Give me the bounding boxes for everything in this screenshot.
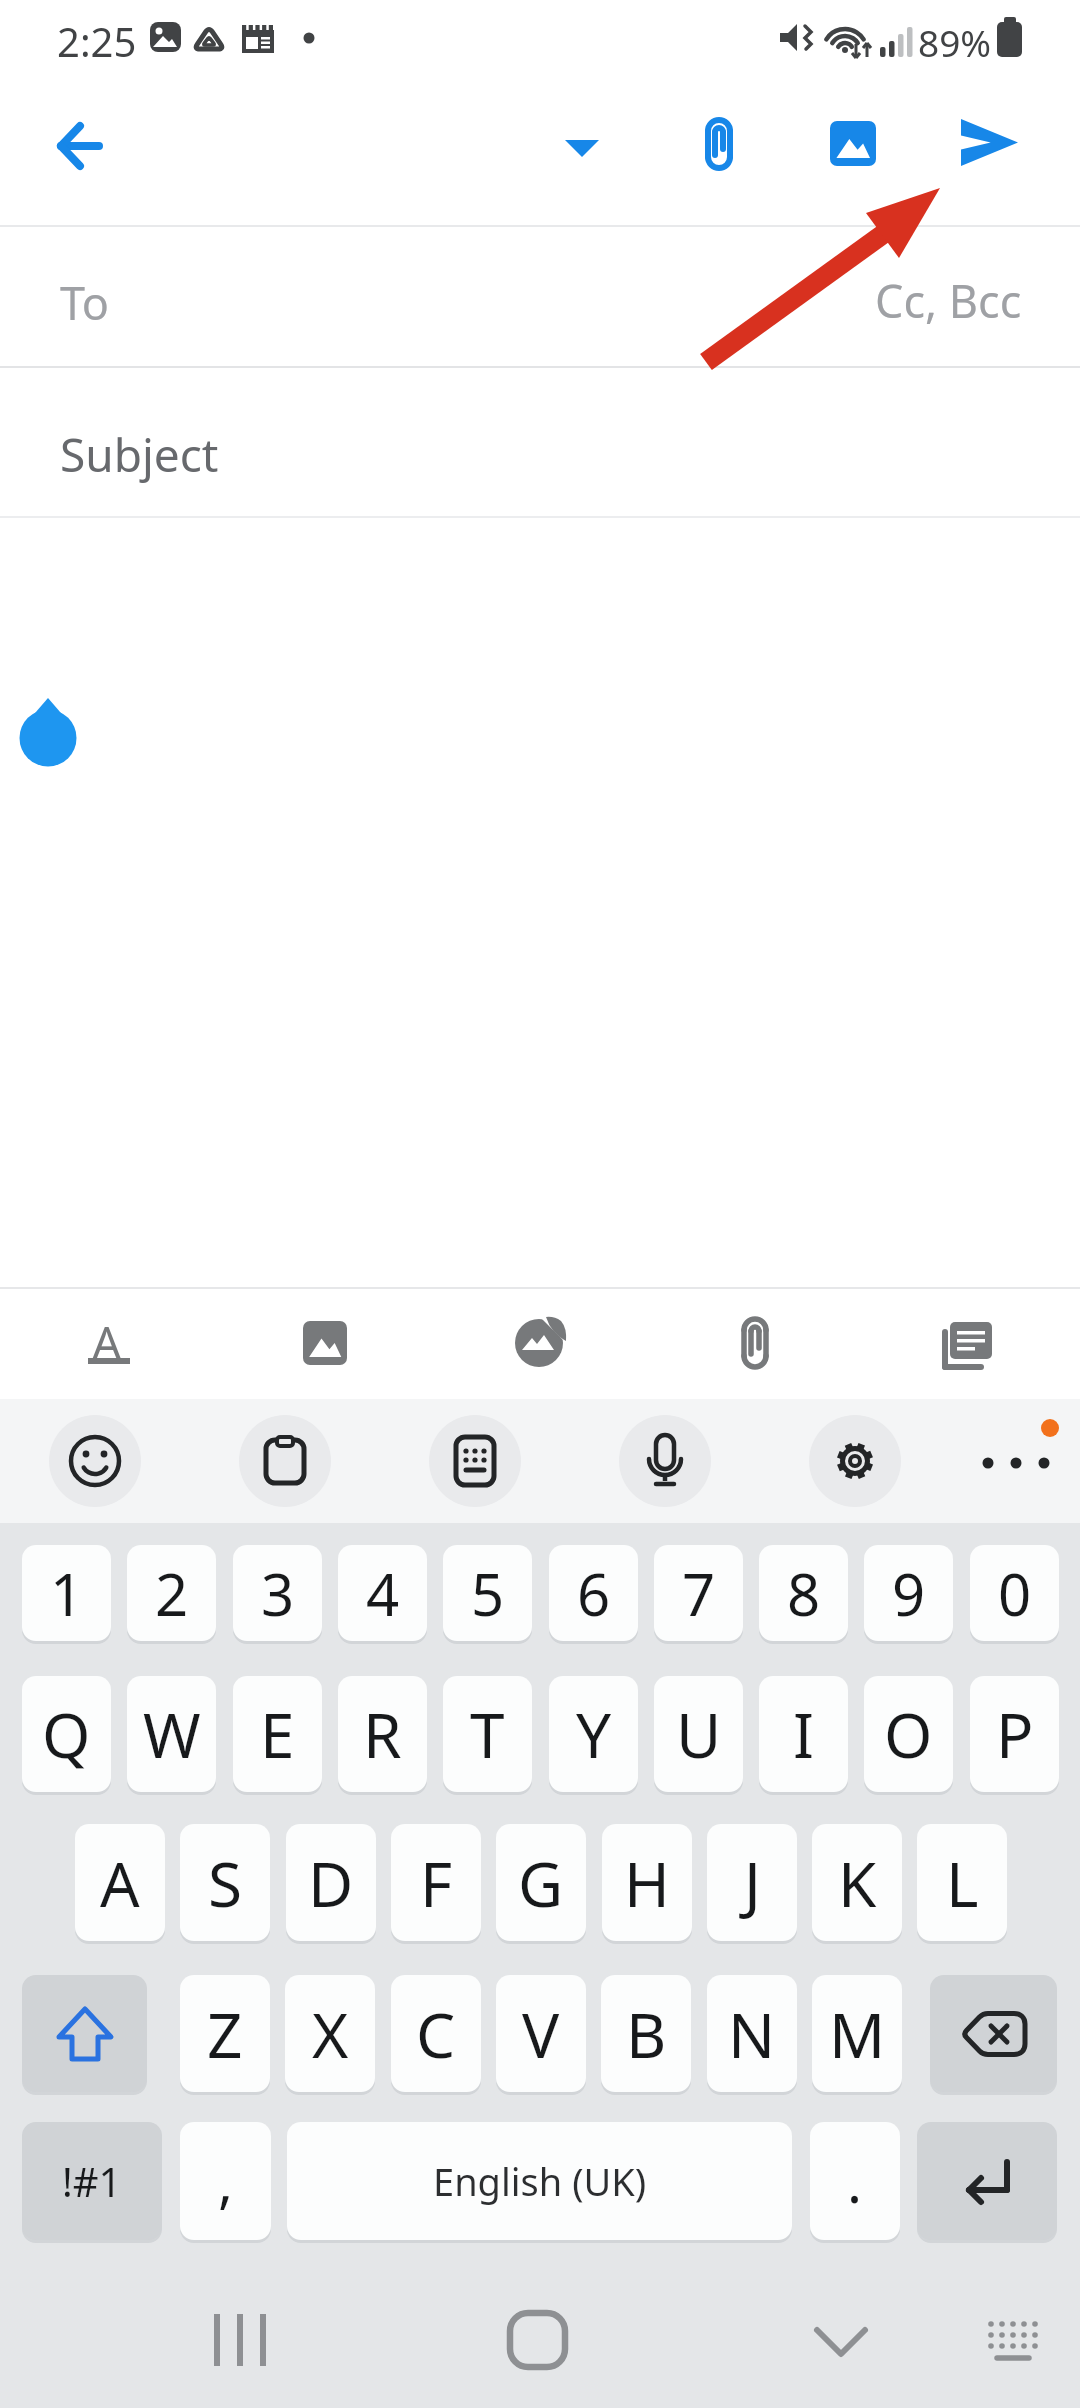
button[interactable]: 9 — [864, 1545, 953, 1641]
button[interactable]: 6 — [549, 1545, 638, 1641]
button[interactable] — [239, 1415, 331, 1507]
staticText: C — [416, 1992, 456, 2076]
button[interactable] — [497, 1302, 583, 1386]
button[interactable]: S — [180, 1824, 270, 1941]
button[interactable] — [712, 1302, 798, 1386]
button[interactable]: 0 — [970, 1545, 1059, 1641]
staticText: N — [728, 1992, 776, 2076]
button[interactable]: E — [233, 1676, 322, 1792]
button[interactable]: 8 — [759, 1545, 848, 1641]
button[interactable] — [0, 518, 1080, 1287]
staticText: I — [793, 1692, 815, 1776]
button[interactable]: Subject — [0, 368, 1080, 516]
button[interactable]: . — [810, 2122, 900, 2240]
staticText: V — [522, 1992, 560, 2076]
button[interactable]: P — [970, 1676, 1059, 1792]
button[interactable]: B — [601, 1975, 691, 2092]
button[interactable]: N — [707, 1975, 797, 2092]
button[interactable] — [810, 103, 896, 183]
staticText: , — [218, 2143, 234, 2219]
staticText: J — [744, 1841, 761, 1925]
button[interactable]: 4 — [338, 1545, 427, 1641]
button[interactable] — [925, 1302, 1015, 1386]
staticText: G — [518, 1841, 564, 1925]
button[interactable]: I — [759, 1676, 848, 1792]
button[interactable] — [791, 2300, 891, 2384]
staticText: 2 — [155, 1554, 189, 1633]
button[interactable]: English (UK) — [287, 2122, 792, 2240]
button[interactable]: To — [0, 227, 540, 367]
button[interactable] — [550, 118, 614, 178]
staticText: Y — [576, 1692, 612, 1776]
button[interactable]: U — [654, 1676, 743, 1792]
button[interactable]: Z — [180, 1975, 270, 2092]
button[interactable]: H — [602, 1824, 692, 1941]
button[interactable]: 5 — [443, 1545, 532, 1641]
button[interactable] — [680, 105, 760, 185]
button[interactable]: A — [78, 1300, 140, 1388]
staticText: E — [260, 1692, 295, 1776]
button[interactable] — [917, 2122, 1057, 2240]
button[interactable]: G — [496, 1824, 586, 1941]
staticText: Q — [42, 1692, 91, 1776]
staticText: H — [624, 1841, 670, 1925]
staticText: F — [420, 1841, 453, 1925]
button[interactable] — [930, 1975, 1057, 2092]
staticText: D — [308, 1841, 354, 1925]
staticText: A — [92, 1311, 122, 1374]
button[interactable]: C — [391, 1975, 481, 2092]
button[interactable]: D — [286, 1824, 376, 1941]
staticText: To — [60, 272, 110, 333]
button[interactable]: R — [338, 1676, 427, 1792]
button[interactable]: F — [391, 1824, 481, 1941]
button[interactable]: K — [812, 1824, 902, 1941]
button[interactable]: W — [127, 1676, 216, 1792]
button[interactable]: A — [75, 1824, 165, 1941]
staticText: T — [470, 1692, 505, 1776]
button[interactable]: V — [496, 1975, 586, 2092]
button[interactable] — [22, 1975, 147, 2092]
staticText: L — [946, 1841, 979, 1925]
staticText: English (UK) — [433, 2155, 647, 2207]
staticText: 6 — [577, 1554, 611, 1633]
button[interactable]: O — [864, 1676, 953, 1792]
staticText: X — [312, 1992, 349, 2076]
staticText: P — [996, 1692, 1034, 1776]
staticText: S — [208, 1841, 243, 1925]
staticText: B — [626, 1992, 667, 2076]
staticText: 3 — [261, 1554, 295, 1633]
button[interactable] — [940, 103, 1036, 183]
button[interactable] — [619, 1415, 711, 1507]
button[interactable] — [283, 1302, 369, 1386]
staticText: A — [100, 1841, 140, 1925]
button[interactable]: , — [180, 2122, 271, 2240]
button[interactable]: Cc, Bcc — [600, 270, 1022, 324]
button[interactable] — [190, 2300, 290, 2384]
staticText: M — [829, 1992, 886, 2076]
staticText: O — [884, 1692, 933, 1776]
staticText: 5 — [471, 1554, 505, 1633]
staticText: 2:25 — [57, 14, 137, 68]
button[interactable]: 1 — [22, 1545, 111, 1641]
button[interactable] — [963, 2300, 1063, 2384]
button[interactable]: 3 — [233, 1545, 322, 1641]
button[interactable]: M — [812, 1975, 902, 2092]
button[interactable]: J — [707, 1824, 797, 1941]
staticText: Cc, Bcc — [875, 270, 1022, 324]
button[interactable]: Y — [549, 1676, 638, 1792]
button[interactable] — [487, 2300, 587, 2384]
button[interactable]: 2 — [127, 1545, 216, 1641]
staticText: Subject — [60, 423, 219, 486]
button[interactable] — [809, 1415, 901, 1507]
button[interactable] — [49, 1415, 141, 1507]
button[interactable]: T — [443, 1676, 532, 1792]
button[interactable]: 7 — [654, 1545, 743, 1641]
button[interactable] — [40, 106, 120, 186]
staticText: 9 — [892, 1554, 926, 1633]
button[interactable] — [429, 1415, 521, 1507]
button[interactable]: L — [917, 1824, 1007, 1941]
button[interactable] — [966, 1415, 1066, 1507]
button[interactable]: Q — [22, 1676, 111, 1792]
button[interactable]: !#1 — [22, 2122, 162, 2240]
button[interactable]: X — [285, 1975, 375, 2092]
